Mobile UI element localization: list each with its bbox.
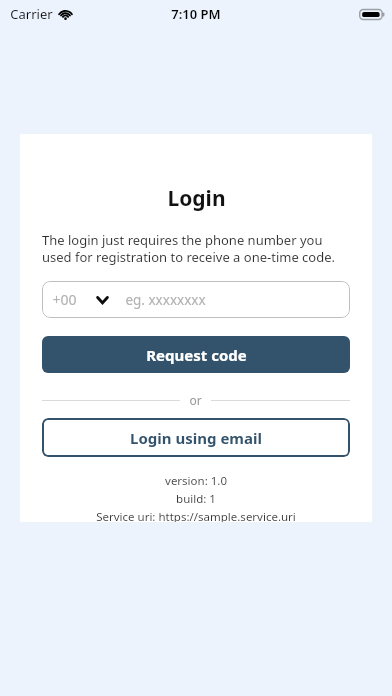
staticText: Login — [167, 184, 226, 213]
staticText: Request code — [146, 345, 247, 365]
button[interactable]: Login using email — [42, 418, 350, 457]
staticText: or — [189, 392, 202, 408]
button[interactable]: Request code — [42, 336, 350, 373]
staticText: Service uri: https://sample.service.uri — [96, 509, 296, 522]
other: Select country code — [97, 296, 108, 304]
staticText: Login using email — [130, 428, 262, 448]
staticText: +00 — [52, 290, 77, 309]
button[interactable]: +00 — [42, 281, 350, 318]
staticText: eg. xxxxxxxx — [125, 291, 206, 309]
staticText: 7:10 PM — [171, 5, 221, 23]
staticText: The login just requires the phone number… — [42, 231, 350, 266]
staticText: version: 1.0 — [165, 473, 227, 489]
staticText: build: 1 — [176, 491, 216, 507]
staticText: Carrier — [10, 5, 53, 23]
